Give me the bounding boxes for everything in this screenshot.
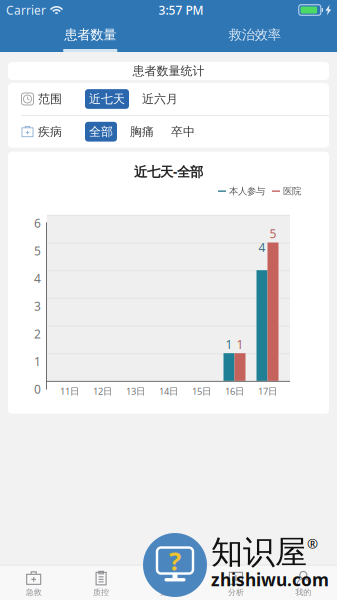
staticText: 12日	[93, 385, 112, 397]
button[interactable]: 胸痛	[126, 122, 158, 141]
staticText: 患者数量统计	[132, 64, 204, 78]
staticText: 4	[34, 270, 41, 286]
staticText: 1	[225, 336, 232, 352]
staticText: 质控	[93, 587, 109, 597]
staticText: 14日	[159, 385, 178, 397]
staticText: zhishiwu.com	[211, 568, 329, 591]
staticText: 全部	[89, 124, 113, 139]
staticText: 卒中	[171, 124, 195, 139]
button[interactable]: 患者数量	[8, 20, 172, 52]
staticText: 救治效率	[229, 27, 281, 43]
staticText: 1	[34, 353, 41, 369]
button[interactable]: 卒中	[167, 122, 199, 141]
button[interactable]: 近七天	[85, 89, 129, 109]
button[interactable]: 全部	[85, 122, 117, 141]
staticText: 近七天-全部	[134, 163, 203, 180]
staticText: 16日	[225, 385, 244, 397]
button[interactable]: 我的	[270, 565, 337, 600]
staticText: 随访	[160, 587, 176, 597]
button[interactable]: 随访	[135, 565, 202, 600]
staticText: 范围	[38, 92, 62, 106]
button[interactable]: 分析	[202, 565, 270, 600]
staticText: 13日	[126, 385, 145, 397]
staticText: 0	[34, 381, 41, 397]
staticText: 2	[34, 326, 41, 342]
staticText: 近六月	[142, 92, 178, 106]
staticText: 近七天	[89, 92, 125, 106]
staticText: 3	[34, 298, 41, 314]
staticText: 6	[34, 215, 41, 231]
staticText: 胸痛	[130, 124, 154, 139]
staticText: ?	[169, 544, 181, 577]
staticText: Carrier	[6, 2, 46, 18]
staticText: 知识屋	[211, 533, 307, 572]
button[interactable]: 救治效率	[172, 20, 337, 52]
staticText: 患者数量	[64, 27, 116, 43]
staticText: 分析	[228, 587, 244, 597]
button[interactable]: 质控	[67, 565, 135, 600]
staticText: 1	[236, 336, 243, 352]
staticText: 3:57 PM	[158, 2, 203, 18]
staticText: ®	[307, 535, 318, 552]
staticText: 17日	[258, 385, 277, 397]
staticText: 疾病	[38, 124, 62, 139]
staticText: 急救	[26, 587, 42, 597]
button[interactable]: 近六月	[138, 89, 182, 109]
staticText: 本人参与	[229, 185, 265, 197]
staticText: 15日	[192, 385, 211, 397]
staticText: 5	[34, 243, 41, 259]
button[interactable]: 急救	[0, 565, 67, 600]
staticText: 医院	[283, 185, 301, 197]
staticText: 11日	[60, 385, 79, 397]
staticText: 我的	[295, 587, 311, 597]
staticText: 4	[258, 239, 265, 255]
staticText: 5	[269, 226, 276, 241]
